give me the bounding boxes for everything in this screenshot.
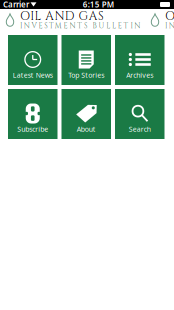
staticText: Archives — [126, 70, 153, 80]
button[interactable]: Archives — [115, 35, 164, 85]
staticText: INVESTMENTS BULLETIN — [165, 21, 174, 31]
staticText: Subscribe — [17, 124, 48, 134]
staticText: Search — [129, 124, 151, 134]
button[interactable]: Top Stories — [61, 35, 111, 85]
staticText: INVESTMENTS BULLETIN — [20, 21, 140, 31]
staticText: Carrier — [3, 0, 29, 10]
staticText: 6:15 PM — [83, 0, 114, 10]
staticText: Top Stories — [68, 70, 104, 80]
button[interactable]: Subscribe — [8, 89, 57, 139]
button[interactable]: Latest News — [8, 35, 57, 85]
button[interactable]: Search — [115, 89, 164, 139]
staticText: OIL AND GAS — [165, 8, 174, 25]
staticText: Latest News — [13, 70, 53, 80]
staticText: OIL AND GAS — [20, 8, 104, 25]
staticText: About — [77, 124, 96, 134]
button[interactable]: About — [61, 89, 111, 139]
